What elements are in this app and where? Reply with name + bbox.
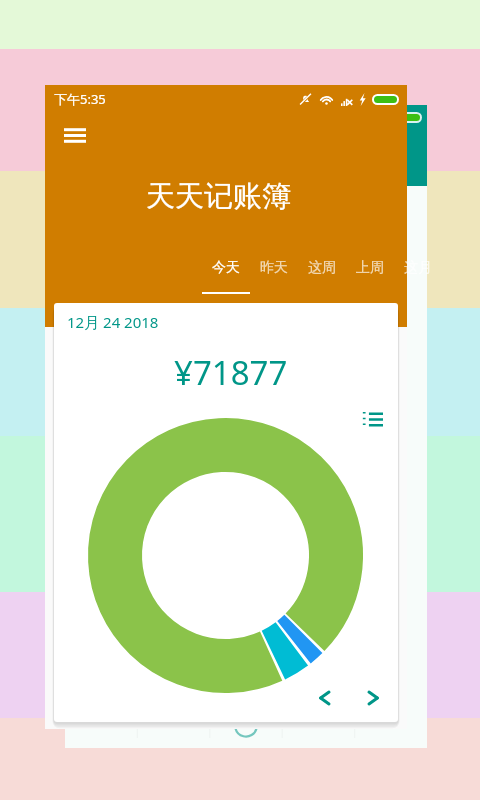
staticText: 这周 <box>308 259 336 277</box>
button[interactable]: Menu <box>51 111 99 159</box>
button[interactable]: List view <box>356 403 388 435</box>
button[interactable]: 上周 <box>346 248 394 294</box>
staticText: 这月 <box>404 259 432 277</box>
staticText: 12月 24 2018 <box>67 312 159 332</box>
button[interactable]: Previous <box>310 684 338 712</box>
staticText: 今天 <box>212 259 240 277</box>
staticText: 天天记账簿 <box>146 178 291 215</box>
staticText: ¥71877 <box>174 350 288 395</box>
staticText: 上周 <box>356 259 384 277</box>
staticText: 昨天 <box>260 259 288 277</box>
button[interactable]: 今天 <box>202 248 250 294</box>
button[interactable]: Next <box>359 684 387 712</box>
button[interactable]: 这周 <box>298 248 346 294</box>
staticText: 下午5:35 <box>54 90 106 108</box>
button[interactable]: 这月 <box>394 248 442 294</box>
button[interactable]: 昨天 <box>250 248 298 294</box>
